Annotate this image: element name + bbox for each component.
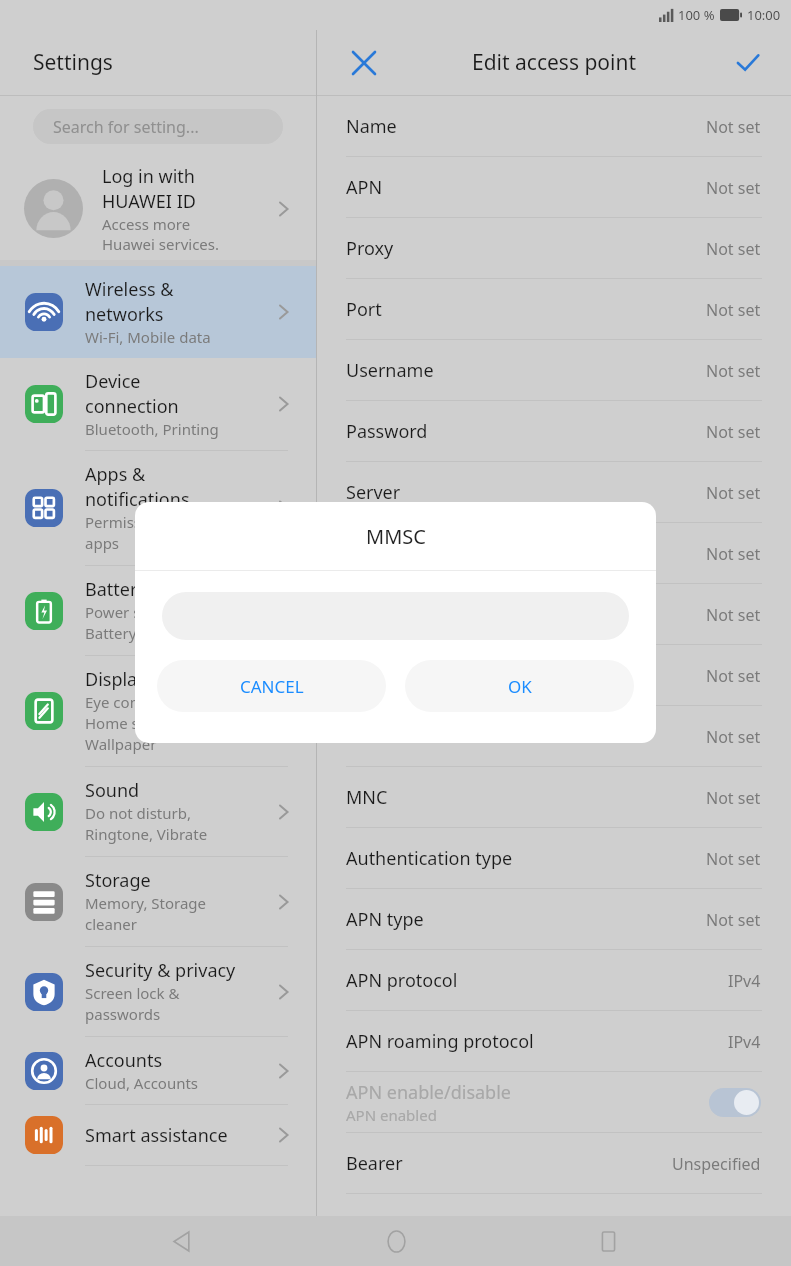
staticText: CANCEL [240, 675, 304, 698]
staticText: Name [346, 114, 397, 139]
staticText: connection [85, 394, 179, 419]
staticText: Not set [706, 848, 761, 870]
staticText: Huawei services. [102, 234, 220, 254]
button[interactable]: Storage [0, 857, 316, 947]
staticText: APN enabled [346, 1105, 437, 1125]
staticText: Do not disturb, Ringtone, Vibrate [85, 803, 208, 845]
staticText: Not set [706, 604, 761, 626]
button[interactable]: Bearer [317, 1133, 791, 1194]
staticText: Not set [706, 299, 761, 321]
staticText: Password [346, 419, 428, 444]
staticText: Edit access point [472, 48, 637, 77]
staticText: Accounts [85, 1048, 163, 1073]
button[interactable]: APN [317, 157, 791, 218]
button[interactable]: MMSC [317, 523, 791, 584]
button[interactable]: Recents [578, 1216, 638, 1266]
staticText: Port [346, 297, 382, 322]
staticText: Smart assistance [85, 1123, 228, 1148]
staticText: Not set [706, 787, 761, 809]
staticText: Not set [706, 177, 761, 199]
staticText: Settings [33, 48, 113, 77]
staticText: Unspecified [672, 1153, 761, 1175]
button[interactable]: APN enable/disable [317, 1072, 791, 1133]
button[interactable]: Security & privacy [0, 947, 316, 1037]
staticText: Screen lock & passwords [85, 983, 180, 1025]
staticText: Authentication type [346, 846, 513, 871]
button[interactable]: Display [0, 656, 316, 767]
staticText: Bearer [346, 1151, 403, 1176]
staticText: Cloud, Accounts [85, 1073, 199, 1093]
button[interactable]: Apps & [0, 451, 316, 566]
staticText: Access more [102, 214, 191, 234]
staticText: Not set [706, 482, 761, 504]
staticText: Permissions, Default apps [85, 512, 230, 554]
staticText: Not set [706, 543, 761, 565]
staticText: Sound [85, 778, 140, 803]
staticText: Not set [706, 421, 761, 443]
staticText: Username [346, 358, 434, 383]
staticText: Server [346, 480, 401, 505]
button[interactable]: CANCEL [157, 660, 386, 712]
button[interactable]: MCC [317, 706, 791, 767]
button[interactable]: Search for setting... [33, 109, 283, 144]
button[interactable]: Smart assistance [0, 1105, 316, 1166]
staticText: APN protocol [346, 968, 458, 993]
staticText: Wireless & [85, 277, 174, 302]
button[interactable]: OK [405, 660, 634, 712]
button[interactable]: Cancel [343, 42, 385, 84]
staticText: APN enable/disable [346, 1080, 511, 1105]
button[interactable]: APN roaming protocol [317, 1011, 791, 1072]
button[interactable]: Username [317, 340, 791, 401]
staticText: Power saving, Battery usage [85, 602, 183, 644]
staticText: MMS port [346, 663, 430, 688]
staticText: APN roaming protocol [346, 1029, 534, 1054]
staticText: HUAWEI ID [102, 189, 196, 214]
staticText: Not set [706, 665, 761, 687]
staticText: Display [85, 667, 147, 692]
staticText: MCC [346, 724, 385, 749]
staticText: Memory, Storage cleaner [85, 893, 207, 935]
staticText: Not set [706, 238, 761, 260]
button[interactable]: MMS port [317, 645, 791, 706]
button[interactable]: Server [317, 462, 791, 523]
staticText: Battery [85, 577, 147, 602]
button[interactable]: APN protocol [317, 950, 791, 1011]
staticText: Wi-Fi, Mobile data [85, 327, 211, 347]
staticText: Security & privacy [85, 958, 236, 983]
button[interactable]: Log in with [0, 157, 316, 260]
button[interactable]: Battery [0, 566, 316, 656]
button[interactable]: APN type [317, 889, 791, 950]
button[interactable]: Wireless & [0, 266, 316, 358]
staticText: Bluetooth, Printing [85, 419, 219, 439]
button[interactable]: APN enable toggle [709, 1088, 761, 1117]
staticText: notifications [85, 487, 190, 512]
button[interactable]: Device [0, 358, 316, 451]
button[interactable]: Proxy [317, 218, 791, 279]
button[interactable]: Save [727, 42, 769, 84]
button[interactable]: Accounts [0, 1037, 316, 1105]
staticText: Not set [706, 909, 761, 931]
staticText: Proxy [346, 236, 394, 261]
button[interactable]: Sound [0, 767, 316, 857]
button[interactable]: Authentication type [317, 828, 791, 889]
staticText: 10:00 [747, 6, 781, 24]
button[interactable]: Home [366, 1216, 426, 1266]
button[interactable]: Back [153, 1216, 213, 1266]
button[interactable]: Password [317, 401, 791, 462]
staticText: Not set [706, 726, 761, 748]
staticText: Search for setting... [53, 116, 199, 138]
staticText: IPv4 [728, 970, 761, 992]
staticText: OK [508, 675, 532, 698]
staticText: Apps & [85, 462, 146, 487]
staticText: IPv4 [728, 1031, 761, 1053]
button[interactable]: MNC [317, 767, 791, 828]
button[interactable]: MMS proxy [317, 584, 791, 645]
staticText: Eye comfort, Home screen style, Wallpape… [85, 692, 219, 755]
button[interactable]: Name [317, 96, 791, 157]
button[interactable]: Port [317, 279, 791, 340]
staticText: Storage [85, 868, 151, 893]
staticText: Log in with [102, 164, 195, 189]
staticText: Not set [706, 116, 761, 138]
